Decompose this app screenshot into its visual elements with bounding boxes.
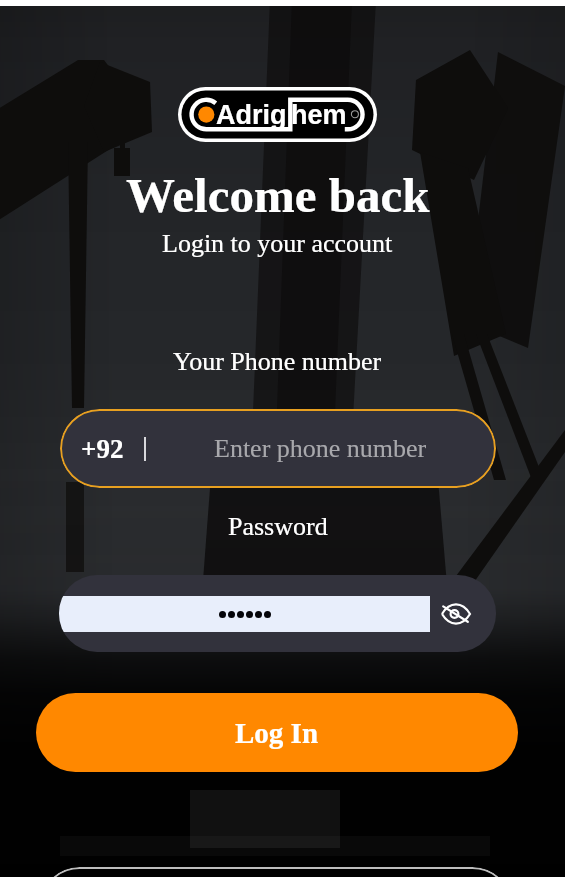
button[interactable]: Adrighem logo — [178, 87, 377, 142]
staticText: Enter phone number — [214, 434, 427, 463]
button[interactable]: Log In — [36, 693, 518, 772]
staticText: Log In — [235, 717, 319, 749]
staticText: Adrig — [216, 100, 287, 130]
button[interactable]: Show password — [434, 592, 478, 636]
staticText: +92 — [81, 434, 124, 464]
button[interactable]: +92 — [60, 409, 496, 488]
staticText: Password — [228, 512, 328, 541]
button[interactable] — [40, 867, 512, 877]
staticText: Login to your account — [162, 229, 393, 258]
button[interactable]: Show password — [59, 575, 496, 652]
staticText: Your Phone number — [173, 347, 382, 376]
staticText: hem — [291, 100, 347, 130]
staticText: Welcome back — [126, 168, 430, 222]
